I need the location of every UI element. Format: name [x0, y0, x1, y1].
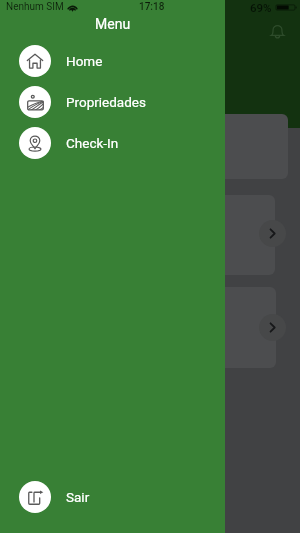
staticText: Menu: [95, 16, 131, 32]
staticText: Nenhum SIM: [6, 1, 64, 13]
staticText: Check-In: [66, 135, 119, 151]
button[interactable]: Abrir: [259, 314, 286, 341]
button[interactable]: Propriedades: [0, 81, 225, 122]
staticText: Home: [66, 53, 103, 69]
staticText: 69%: [250, 1, 272, 14]
staticText: 17:18: [139, 1, 165, 13]
button[interactable]: Sair: [0, 476, 225, 517]
button[interactable]: Check-In: [0, 122, 225, 163]
button[interactable]: Abrir: [259, 220, 286, 247]
staticText: Sair: [66, 489, 90, 505]
button[interactable]: Notificacoes: [269, 22, 286, 39]
staticText: Propriedades: [66, 94, 146, 110]
button[interactable]: Home: [0, 40, 225, 81]
